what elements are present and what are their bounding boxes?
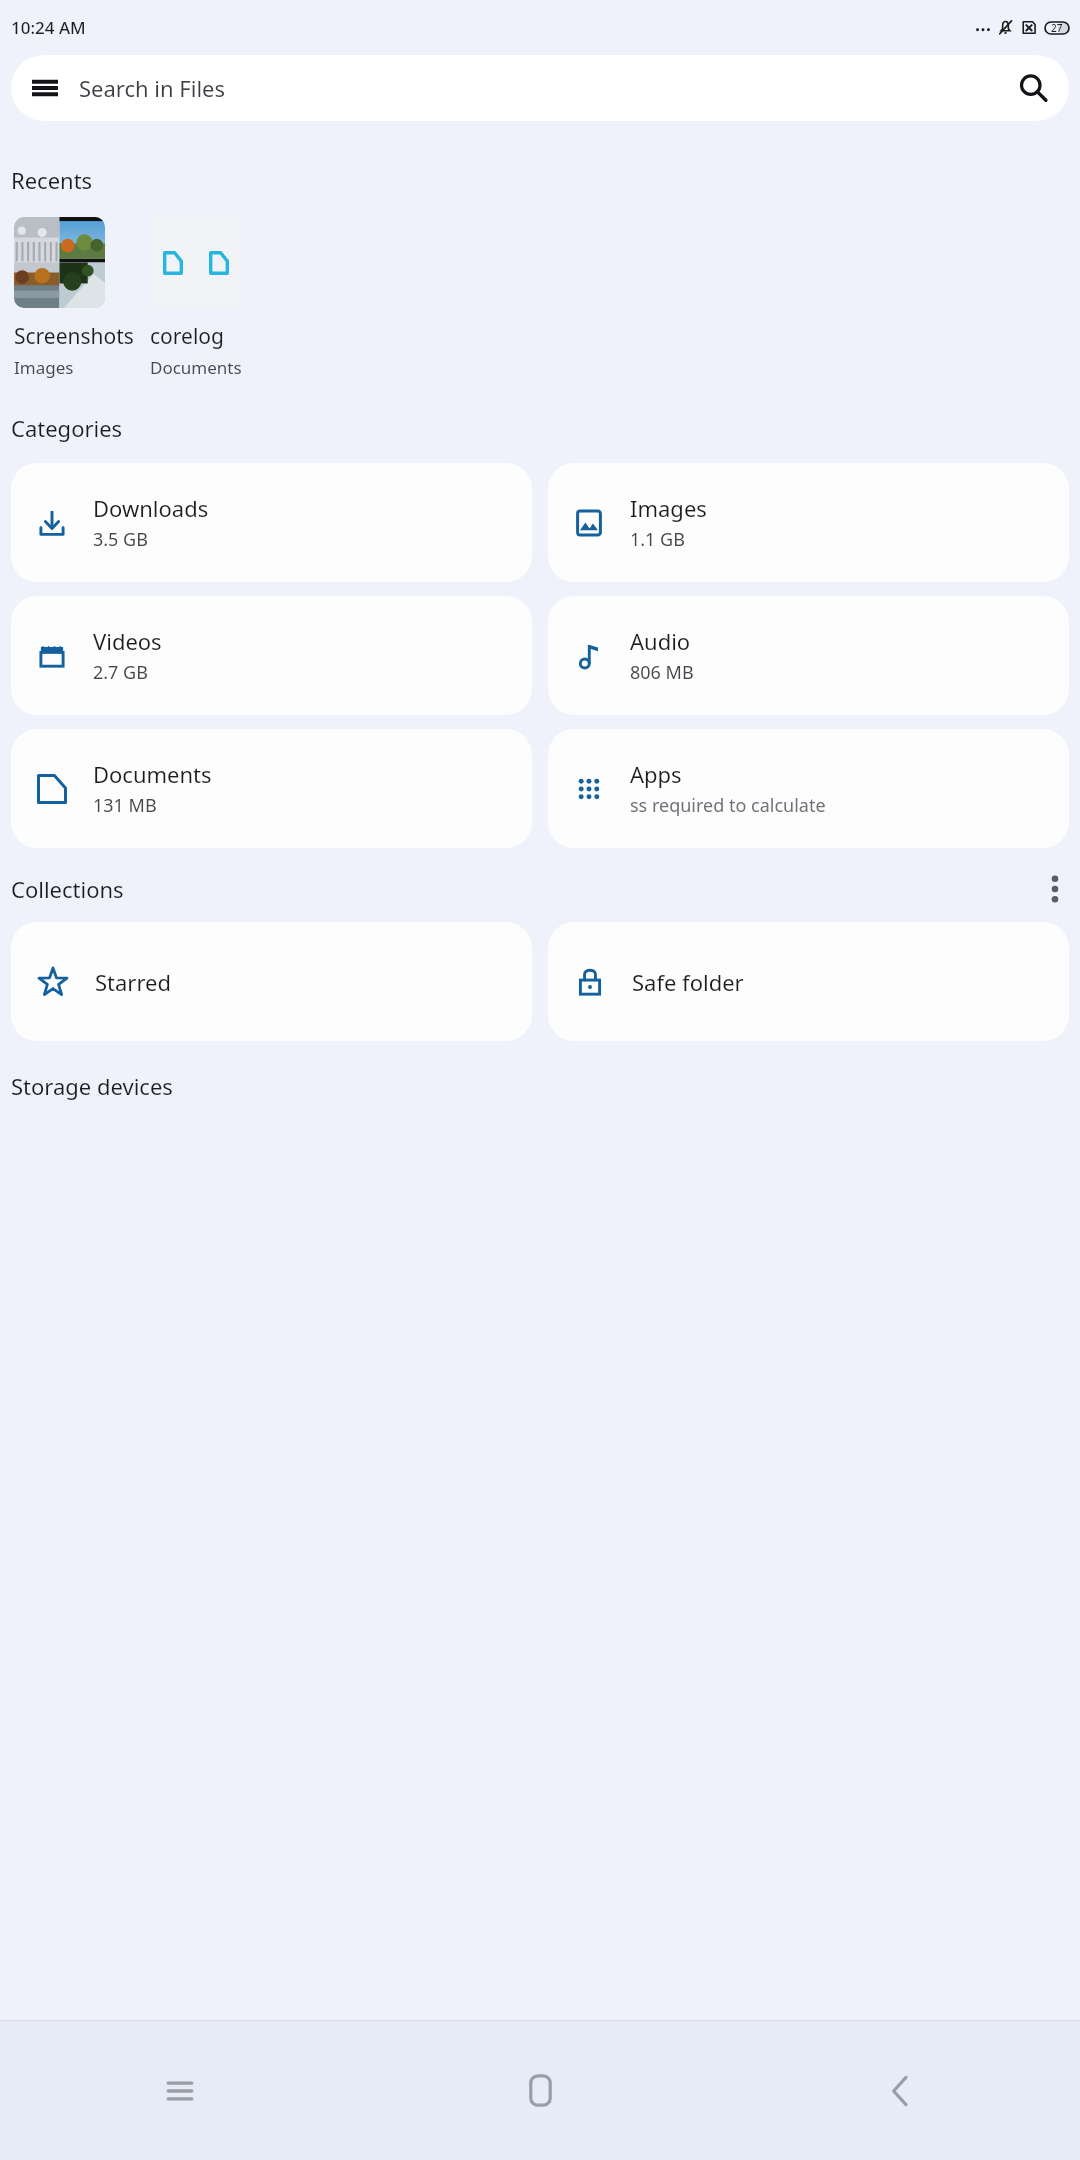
button[interactable]: Recent apps	[0, 2021, 360, 2160]
button[interactable]: Starred	[11, 922, 532, 1041]
staticText: 1.1 GB	[630, 527, 685, 552]
staticText: 10:24 AM	[11, 16, 86, 39]
button[interactable]: Documents	[11, 729, 532, 848]
button[interactable]	[150, 217, 195, 308]
staticText: Images	[630, 493, 707, 523]
button[interactable]: Images	[548, 463, 1069, 582]
staticText: 27	[1051, 21, 1063, 35]
button[interactable]: Back	[720, 2021, 1080, 2160]
button[interactable]	[196, 217, 241, 308]
button[interactable]: Open navigation menu	[11, 55, 1069, 121]
button[interactable]: More options	[1050, 874, 1060, 904]
staticText: Videos	[93, 626, 162, 656]
staticText: Screenshots	[14, 322, 134, 351]
staticText: Recents	[11, 165, 93, 195]
staticText: Categories	[11, 413, 123, 443]
button[interactable]: Apps	[548, 729, 1069, 848]
staticText: Storage devices	[11, 1071, 173, 1101]
button[interactable]: Safe folder	[548, 922, 1069, 1041]
staticText: 3.5 GB	[93, 527, 148, 552]
button[interactable]: Audio	[548, 596, 1069, 715]
button[interactable]: Downloads	[11, 463, 532, 582]
staticText: Audio	[630, 626, 691, 656]
button[interactable]: Videos	[11, 596, 532, 715]
staticText: Documents	[93, 759, 212, 789]
button[interactable]	[14, 217, 105, 308]
staticText: 2.7 GB	[93, 660, 148, 685]
button[interactable]: Home	[360, 2021, 720, 2160]
staticText: ss required to calculate	[630, 793, 826, 818]
staticText: Search in Files	[79, 73, 226, 103]
staticText: 806 MB	[630, 660, 694, 685]
staticText: Collections	[11, 874, 124, 904]
staticText: Images	[14, 356, 74, 379]
staticText: Apps	[630, 759, 682, 789]
staticText: Documents	[150, 356, 242, 379]
staticText: Starred	[95, 967, 172, 997]
staticText: 131 MB	[93, 793, 157, 818]
staticText: corelog	[150, 322, 224, 351]
button[interactable]: Open navigation menu	[32, 75, 58, 101]
staticText: Safe folder	[632, 967, 744, 997]
staticText: Downloads	[93, 493, 209, 523]
button[interactable]: Search	[1019, 74, 1047, 102]
